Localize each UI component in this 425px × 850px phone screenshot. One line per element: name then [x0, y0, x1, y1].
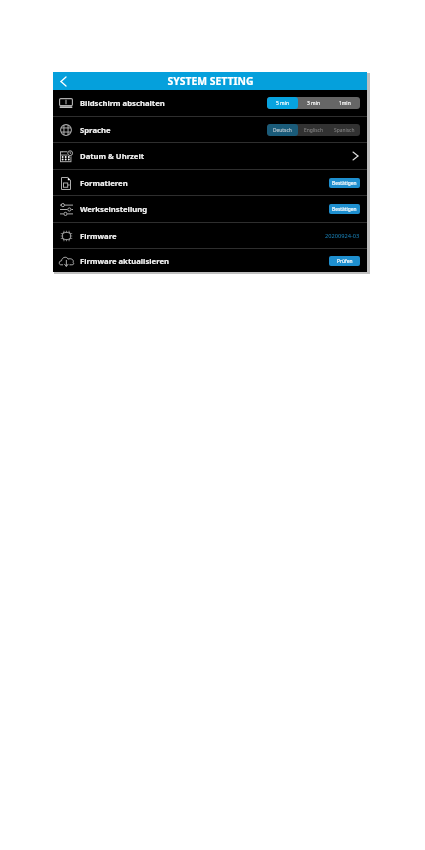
button[interactable]: Bestätigen	[329, 204, 360, 214]
button[interactable]: 3 min	[298, 97, 329, 109]
staticText: SYSTEM SETTING	[167, 74, 254, 88]
staticText: Prüfen	[337, 258, 353, 265]
staticText: Englisch	[304, 127, 323, 134]
staticText: Firmware	[80, 231, 117, 241]
button[interactable]: Sprache	[53, 117, 367, 142]
button[interactable]: Prüfen	[329, 256, 360, 266]
button[interactable]: Werkseinstellung	[53, 196, 367, 222]
staticText: Bestätigen	[332, 180, 357, 187]
staticText: Deutsch	[273, 127, 292, 134]
button[interactable]: Bildschirm abschalten	[53, 90, 367, 116]
button[interactable]: Englisch	[298, 124, 329, 136]
button[interactable]: 1min	[329, 97, 360, 109]
button[interactable]: Open Date and Time	[350, 149, 360, 163]
staticText: Sprache	[80, 125, 111, 135]
staticText: Bildschirm abschalten	[80, 98, 165, 108]
staticText: Werkseinstellung	[80, 204, 148, 214]
staticText: Formatieren	[80, 178, 128, 188]
staticText: Datum & Uhrzeit	[80, 151, 145, 161]
staticText: Spanisch	[334, 127, 355, 134]
button[interactable]: Bestätigen	[329, 178, 360, 188]
button[interactable]: 5 min	[267, 97, 298, 109]
button[interactable]: Deutsch	[267, 124, 298, 136]
button[interactable]: Spanisch	[329, 124, 360, 136]
staticText: 1min	[339, 100, 351, 107]
staticText: 20200924-03	[325, 232, 360, 240]
button[interactable]: Back	[53, 72, 73, 90]
staticText: 3 min	[307, 100, 320, 107]
button[interactable]: Formatieren	[53, 170, 367, 195]
button[interactable]: Firmware aktualisieren	[53, 249, 367, 272]
button[interactable]: Firmware	[53, 223, 367, 248]
button[interactable]: Datum & Uhrzeit	[53, 143, 367, 169]
staticText: Firmware aktualisieren	[80, 256, 170, 266]
staticText: Bestätigen	[332, 206, 357, 213]
staticText: 5 min	[276, 100, 289, 107]
